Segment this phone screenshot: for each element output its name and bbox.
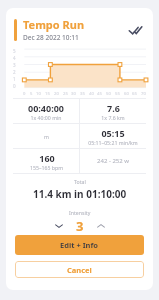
staticText: 3 (13, 62, 16, 68)
staticText: Dec 28 2022 10:11 (23, 33, 79, 42)
staticText: 1 (13, 76, 16, 82)
staticText: Cancel (67, 265, 92, 275)
staticText: Tempo Run (23, 17, 85, 32)
staticText: 0 (13, 83, 16, 89)
button[interactable]: 7.6 (80, 99, 146, 123)
staticText: Edit + Info (60, 240, 99, 250)
button[interactable]: Edit + Info (15, 235, 144, 255)
staticText: 242 - 252 w (97, 157, 129, 165)
staticText: 2 (13, 69, 16, 75)
staticText: 5 (13, 48, 16, 54)
staticText: 7.6 (107, 102, 120, 114)
staticText: 05:11–05:21 min/km (88, 139, 138, 146)
staticText: 5 (30, 91, 33, 97)
button[interactable]: 160 (13, 149, 79, 173)
staticText: 70 (141, 91, 146, 97)
staticText: Total (74, 178, 86, 185)
staticText: 15 (45, 91, 50, 97)
staticText: 0 (23, 91, 26, 97)
button[interactable]: 05:15 (80, 124, 146, 148)
staticText: 40 (89, 91, 94, 97)
staticText: 10 (36, 91, 41, 97)
staticText: m (44, 133, 49, 140)
button[interactable]: Increase intensity (92, 217, 110, 235)
staticText: 1x 7.6 km (101, 114, 125, 121)
staticText: 11.4 km in 01:10:00 (33, 187, 127, 201)
button[interactable]: Cancel (15, 261, 144, 278)
staticText: 55 (115, 91, 120, 97)
button[interactable]: 00:40:00 (13, 99, 79, 123)
button[interactable]: Completed (126, 21, 144, 39)
staticText: 3 (76, 217, 84, 235)
staticText: 60 (124, 91, 129, 97)
staticText: 05:15 (101, 127, 125, 139)
staticText: 20 (54, 91, 59, 97)
staticText: 30 (71, 91, 76, 97)
staticText: 25 (63, 91, 68, 97)
staticText: 160 (39, 152, 55, 164)
staticText: 00:40:00 (28, 102, 64, 114)
staticText: 50 (106, 91, 111, 97)
staticText: 4 (13, 55, 16, 61)
staticText: 45 (97, 91, 102, 97)
staticText: 65 (132, 91, 137, 97)
button[interactable]: 242 - 252 w (80, 149, 146, 173)
staticText: 35 (80, 91, 85, 97)
button[interactable]: m (13, 124, 79, 148)
staticText: Intensity (69, 209, 91, 216)
staticText: 155–165 bpm (30, 164, 63, 171)
staticText: 1x 40:00 min (30, 114, 62, 121)
button[interactable]: Decrease intensity (50, 217, 68, 235)
